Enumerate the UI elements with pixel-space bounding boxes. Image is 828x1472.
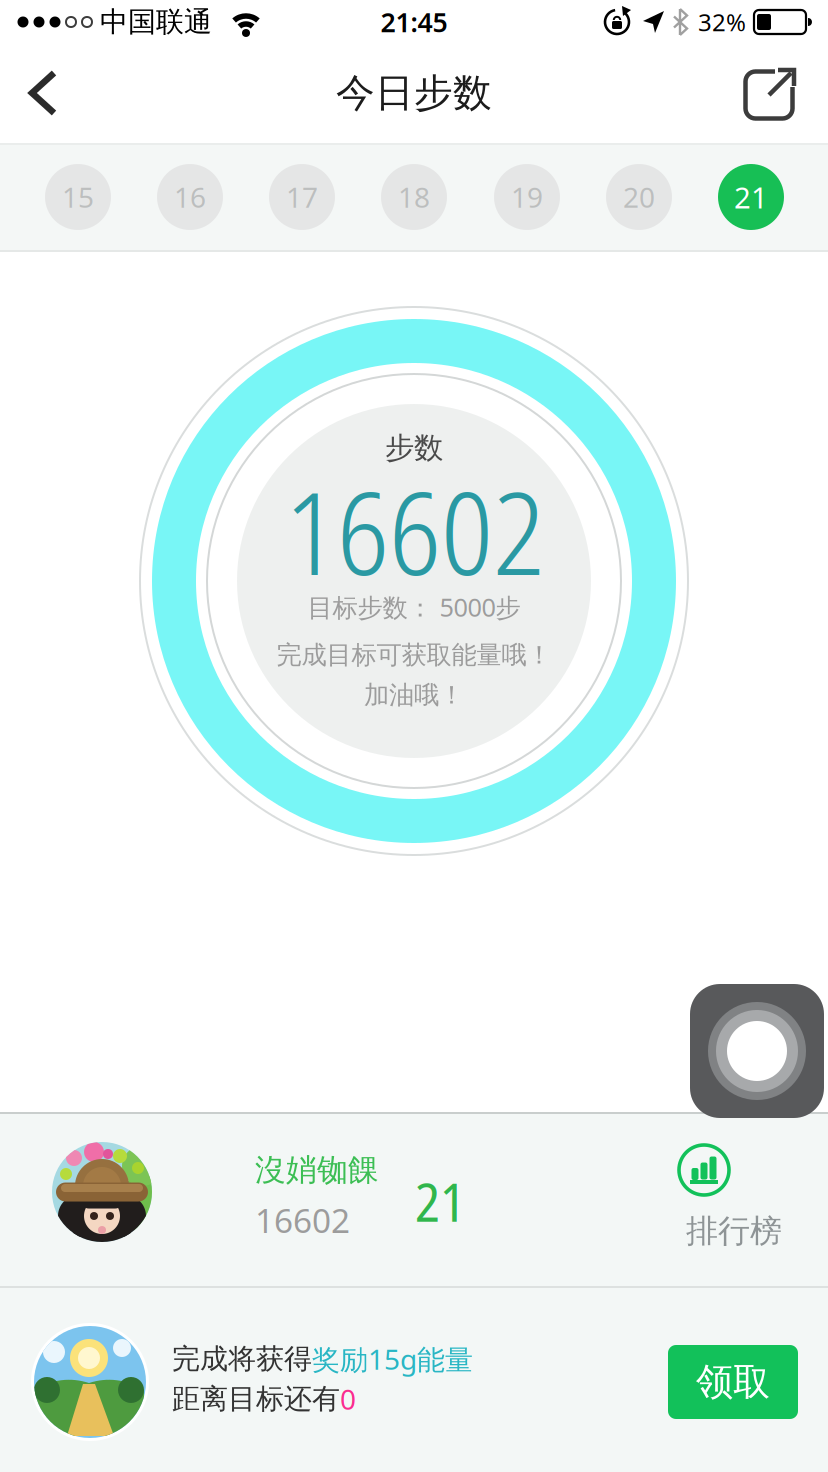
- button[interactable]: 领取: [668, 1345, 798, 1419]
- staticText: 0: [340, 1380, 356, 1418]
- staticText: 16602: [255, 1198, 350, 1242]
- staticText: 20: [623, 178, 655, 216]
- staticText: 沒娋铷餜: [255, 1151, 379, 1189]
- button[interactable]: Back: [28, 70, 60, 116]
- staticText: 21: [734, 177, 768, 216]
- staticText: 19: [511, 178, 543, 216]
- staticText: 16602: [285, 454, 545, 608]
- staticText: 加油哦！: [364, 679, 464, 710]
- staticText: 21:45: [380, 4, 447, 40]
- button[interactable]: 15: [45, 164, 111, 230]
- button[interactable]: 21: [718, 164, 784, 230]
- staticText: 今日步数: [336, 69, 492, 117]
- button[interactable]: 20: [606, 164, 672, 230]
- staticText: 目标步数： 5000步: [307, 590, 520, 624]
- staticText: 32%: [698, 6, 746, 38]
- staticText: 距离目标还有: [172, 1382, 340, 1416]
- button[interactable]: 18: [381, 164, 447, 230]
- button[interactable]: AssistiveTouch: [690, 984, 824, 1118]
- staticText: 中国联通: [100, 5, 212, 39]
- staticText: 完成将获得: [172, 1342, 312, 1376]
- button[interactable]: Share: [743, 65, 799, 121]
- button[interactable]: 19: [494, 164, 560, 230]
- button[interactable]: 17: [269, 164, 335, 230]
- button[interactable]: 排行榜: [624, 1131, 828, 1269]
- staticText: 17: [286, 178, 318, 216]
- button[interactable]: 16: [157, 164, 223, 230]
- staticText: 领取: [696, 1359, 770, 1405]
- staticText: 完成目标可获取能量哦！: [276, 639, 551, 670]
- staticText: 步数: [385, 430, 443, 466]
- staticText: 15: [62, 178, 94, 216]
- staticText: 奖励15g能量: [312, 1340, 473, 1378]
- staticText: 16: [174, 178, 206, 216]
- staticText: 21: [415, 1165, 465, 1237]
- staticText: 18: [398, 178, 430, 216]
- staticText: 排行榜: [686, 1211, 782, 1251]
